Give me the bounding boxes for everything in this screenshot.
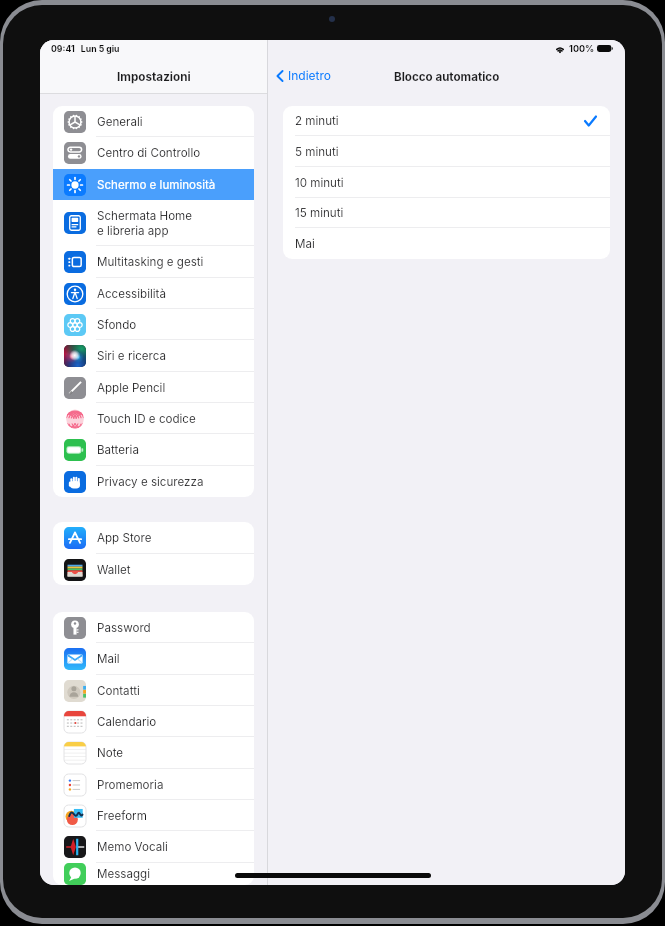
- button[interactable]: 15 minuti: [283, 198, 610, 228]
- staticText: 15 minuti: [295, 206, 344, 220]
- button[interactable]: 10 minuti: [283, 167, 610, 198]
- staticText: Wallet: [97, 563, 131, 577]
- staticText: Privacy e sicurezza: [97, 475, 204, 489]
- button[interactable]: App Store: [53, 522, 254, 554]
- staticText: 5 minuti: [295, 145, 339, 159]
- staticText: Freeform: [97, 809, 147, 823]
- other: Battery 100 percent: [597, 45, 613, 52]
- staticText: Blocco automatico: [394, 70, 500, 84]
- staticText: Batteria: [97, 443, 139, 457]
- staticText: Mai: [295, 237, 315, 251]
- button[interactable]: Privacy e sicurezza: [53, 466, 254, 497]
- button[interactable]: Indietro: [274, 66, 334, 85]
- button[interactable]: Touch ID e codice: [53, 403, 254, 434]
- button[interactable]: Calendario: [53, 706, 254, 737]
- staticText: Multitasking e gesti: [97, 255, 204, 269]
- button[interactable]: Generali: [53, 106, 254, 137]
- other: Wi-Fi: [555, 45, 565, 53]
- staticText: Password: [97, 621, 151, 635]
- button[interactable]: Wallet: [53, 554, 254, 585]
- staticText: Touch ID e codice: [97, 412, 196, 426]
- button[interactable]: 5 minuti: [283, 136, 610, 167]
- staticText: 2 minuti: [295, 114, 339, 128]
- button[interactable]: Apple Pencil: [53, 372, 254, 403]
- button[interactable]: Memo Vocali: [53, 831, 254, 863]
- button[interactable]: Password: [53, 612, 254, 643]
- staticText: Calendario: [97, 715, 157, 729]
- staticText: Indietro: [288, 68, 332, 83]
- staticText: Mail: [97, 652, 120, 666]
- button[interactable]: Schermo e luminosità: [53, 169, 254, 200]
- button[interactable]: Mail: [53, 643, 254, 675]
- button[interactable]: Contatti: [53, 675, 254, 706]
- staticText: 100%: [569, 43, 595, 54]
- staticText: Impostazioni: [117, 70, 191, 84]
- button[interactable]: 2 minuti: [283, 106, 610, 136]
- button[interactable]: Mai: [283, 228, 610, 259]
- button[interactable]: Schermata Home e libreria app: [53, 200, 254, 246]
- button[interactable]: Batteria: [53, 434, 254, 466]
- staticText: Memo Vocali: [97, 840, 168, 854]
- staticText: Messaggi: [97, 867, 151, 881]
- staticText: Promemoria: [97, 778, 164, 792]
- staticText: 09:41 Lun 5 giu: [51, 44, 120, 55]
- staticText: Schermata Home e libreria app: [97, 209, 192, 238]
- button[interactable]: Messaggi: [53, 863, 254, 885]
- staticText: Note: [97, 746, 124, 760]
- button[interactable]: Accessibilità: [53, 278, 254, 309]
- button[interactable]: Sfondo: [53, 309, 254, 340]
- staticText: Siri e ricerca: [97, 349, 167, 363]
- button[interactable]: Multitasking e gesti: [53, 246, 254, 278]
- button[interactable]: Freeform: [53, 800, 254, 831]
- staticText: App Store: [97, 531, 152, 545]
- staticText: Apple Pencil: [97, 381, 166, 395]
- staticText: Accessibilità: [97, 287, 166, 301]
- staticText: Generali: [97, 115, 143, 129]
- button[interactable]: Note: [53, 737, 254, 769]
- staticText: Schermo e luminosità: [97, 178, 216, 192]
- staticText: 10 minuti: [295, 176, 344, 190]
- staticText: Contatti: [97, 684, 140, 698]
- button[interactable]: Siri e ricerca: [53, 340, 254, 372]
- button[interactable]: Centro di Controllo: [53, 137, 254, 169]
- button[interactable]: Promemoria: [53, 769, 254, 800]
- staticText: Sfondo: [97, 318, 137, 332]
- staticText: Centro di Controllo: [97, 146, 201, 160]
